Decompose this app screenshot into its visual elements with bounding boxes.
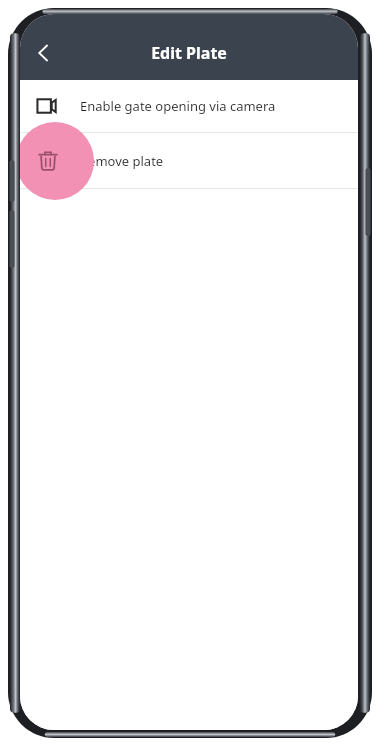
button[interactable]: Back — [20, 29, 68, 77]
button[interactable]: Remove plate — [20, 133, 358, 188]
staticText: Enable gate opening via camera — [80, 97, 276, 115]
button[interactable]: Enable gate opening via camera — [20, 80, 358, 132]
staticText: Remove plate — [80, 152, 164, 170]
staticText: Edit Plate — [20, 42, 358, 64]
